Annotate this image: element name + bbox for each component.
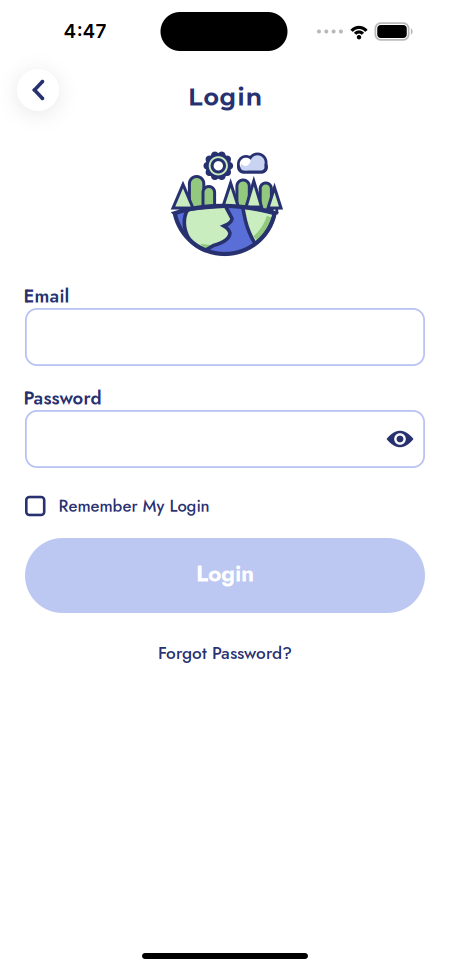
staticText: 4:47 <box>63 19 106 42</box>
button[interactable]: Forgot Password? <box>158 641 292 665</box>
staticText: Password <box>23 385 101 411</box>
staticText: Email <box>23 283 69 309</box>
staticText: Remember My Login <box>58 494 209 518</box>
button[interactable]: Show password <box>386 425 414 453</box>
button[interactable]: Back <box>17 69 59 111</box>
button[interactable]: Remember My Login <box>25 493 425 519</box>
staticText: Login <box>196 557 254 590</box>
staticText: Forgot Password? <box>158 641 292 665</box>
staticText: Login <box>188 83 262 111</box>
button[interactable]: Login <box>25 538 425 613</box>
